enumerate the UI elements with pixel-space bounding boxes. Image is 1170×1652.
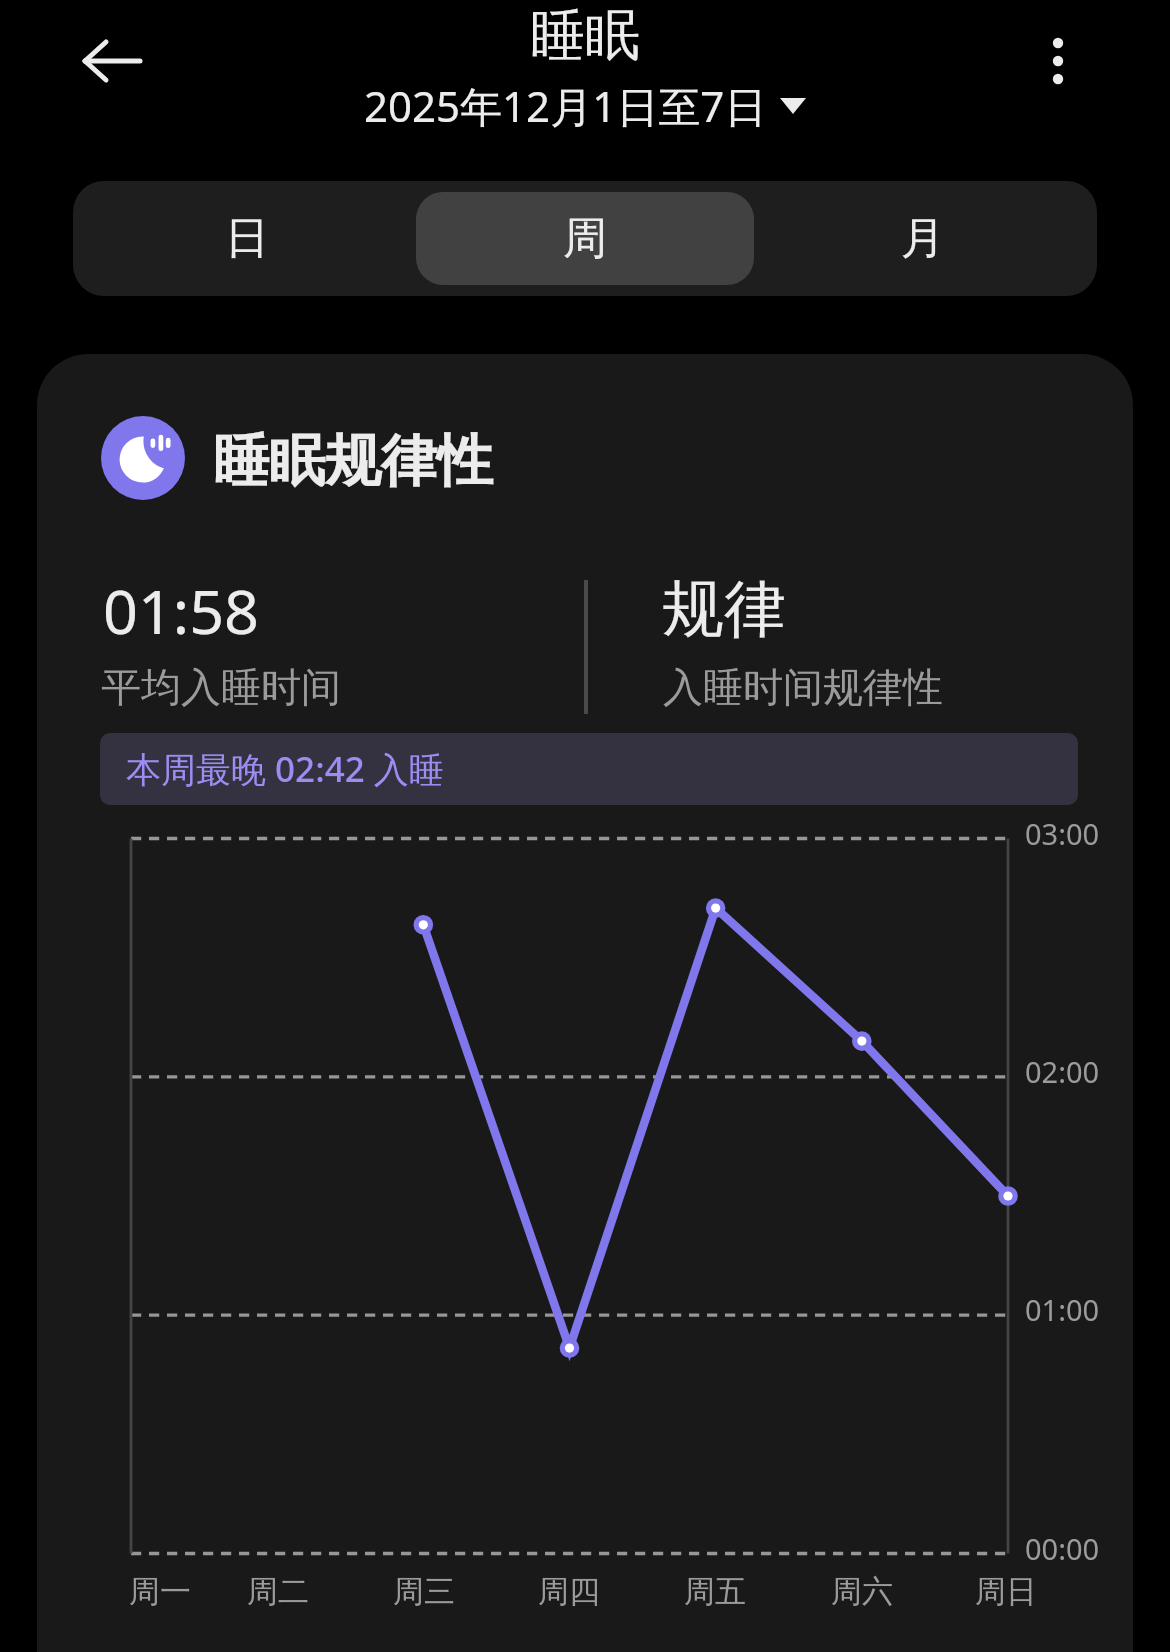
staticText: 睡眠规律性 — [213, 426, 493, 497]
staticText: 02:00 — [1025, 1052, 1100, 1091]
staticText: 周 — [563, 211, 607, 266]
staticText: 01:00 — [1025, 1290, 1100, 1329]
staticText: 周二 — [247, 1572, 309, 1611]
staticText: 本周最晚 02:42 入睡 — [126, 745, 444, 793]
staticText: 入睡时间规律性 — [663, 662, 943, 712]
staticText: 周日 — [975, 1572, 1037, 1611]
button[interactable]: 周 — [416, 192, 754, 285]
button[interactable]: 月 — [754, 192, 1092, 285]
staticText: 周三 — [393, 1572, 455, 1611]
staticText: 月 — [901, 211, 945, 266]
button[interactable]: 日 — [78, 192, 416, 285]
button[interactable]: 睡眠规律性 — [37, 354, 1133, 1652]
staticText: 03:00 — [1025, 814, 1100, 853]
staticText: 00:00 — [1025, 1529, 1100, 1568]
staticText: 周六 — [831, 1572, 893, 1611]
staticText: 平均入睡时间 — [101, 662, 341, 712]
staticText: 日 — [225, 211, 269, 266]
staticText: 2025年12月1日至7日 — [364, 77, 767, 134]
staticText: 睡眠 — [530, 1, 640, 70]
staticText: 规律 — [662, 570, 786, 648]
staticText: 周五 — [684, 1572, 746, 1611]
staticText: 01:58 — [103, 569, 259, 652]
staticText: 周一 — [129, 1572, 191, 1611]
button[interactable]: More options — [1006, 0, 1110, 124]
staticText: 周四 — [538, 1572, 600, 1611]
button[interactable]: 2025年12月1日至7日 — [364, 77, 806, 134]
button[interactable]: 本周最晚 02:42 入睡 — [100, 733, 1078, 805]
button[interactable]: Back — [48, 0, 176, 124]
